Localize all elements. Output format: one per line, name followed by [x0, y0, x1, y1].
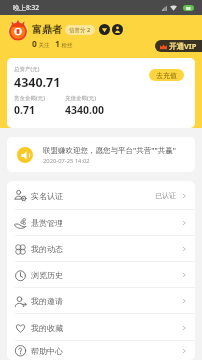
button[interactable]: 浏览历史: [7, 262, 195, 288]
staticText: 开通VIP: [169, 41, 197, 51]
staticText: 实名认证: [31, 191, 63, 201]
staticText: 帮助中心: [31, 346, 63, 356]
staticText: 关注: [37, 41, 50, 49]
button[interactable]: Profile: [112, 24, 123, 35]
staticText: 总资产(元): [14, 65, 40, 73]
button[interactable]: 我的动态: [7, 236, 195, 262]
button[interactable]: VIP level: [99, 24, 110, 35]
staticText: 98: [186, 6, 191, 11]
staticText: 赏金金额(元): [14, 94, 45, 102]
staticText: 浏览历史: [31, 270, 63, 280]
staticText: 富鼎者: [32, 23, 62, 36]
button[interactable]: 帮助中心: [7, 341, 195, 360]
button[interactable]: 实名认证: [7, 181, 195, 210]
staticText: 4340.71: [14, 74, 61, 91]
staticText: 悬赏管理: [31, 218, 63, 228]
button[interactable]: 联盟赚欢迎您，愿您与平台"共营""共赢": [7, 137, 195, 172]
button[interactable]: 悬赏管理: [7, 210, 195, 236]
staticText: 0: [32, 38, 37, 50]
button[interactable]: 去充值: [149, 69, 184, 81]
button[interactable]: 我的收藏: [7, 314, 195, 341]
staticText: 充值金额(元): [65, 94, 96, 102]
staticText: 晚上8:32: [13, 3, 39, 12]
staticText: 已认证: [155, 191, 176, 200]
staticText: 1: [55, 38, 60, 50]
staticText: 联盟赚欢迎您，愿您与平台"共营""共赢": [43, 145, 176, 155]
staticText: 信誉分 2: [69, 26, 91, 34]
staticText: 我的邀请: [31, 296, 63, 306]
staticText: 粉丝: [60, 41, 73, 49]
staticText: 0.71: [14, 103, 35, 117]
staticText: 我的收藏: [31, 323, 63, 333]
staticText: 2020-07-25 14:02: [43, 157, 90, 165]
button[interactable]: 我的邀请: [7, 288, 195, 314]
staticText: 4340.00: [65, 103, 104, 117]
button[interactable]: 开通VIP: [155, 40, 202, 52]
staticText: 去充值: [156, 71, 177, 80]
staticText: 我的动态: [31, 244, 63, 254]
